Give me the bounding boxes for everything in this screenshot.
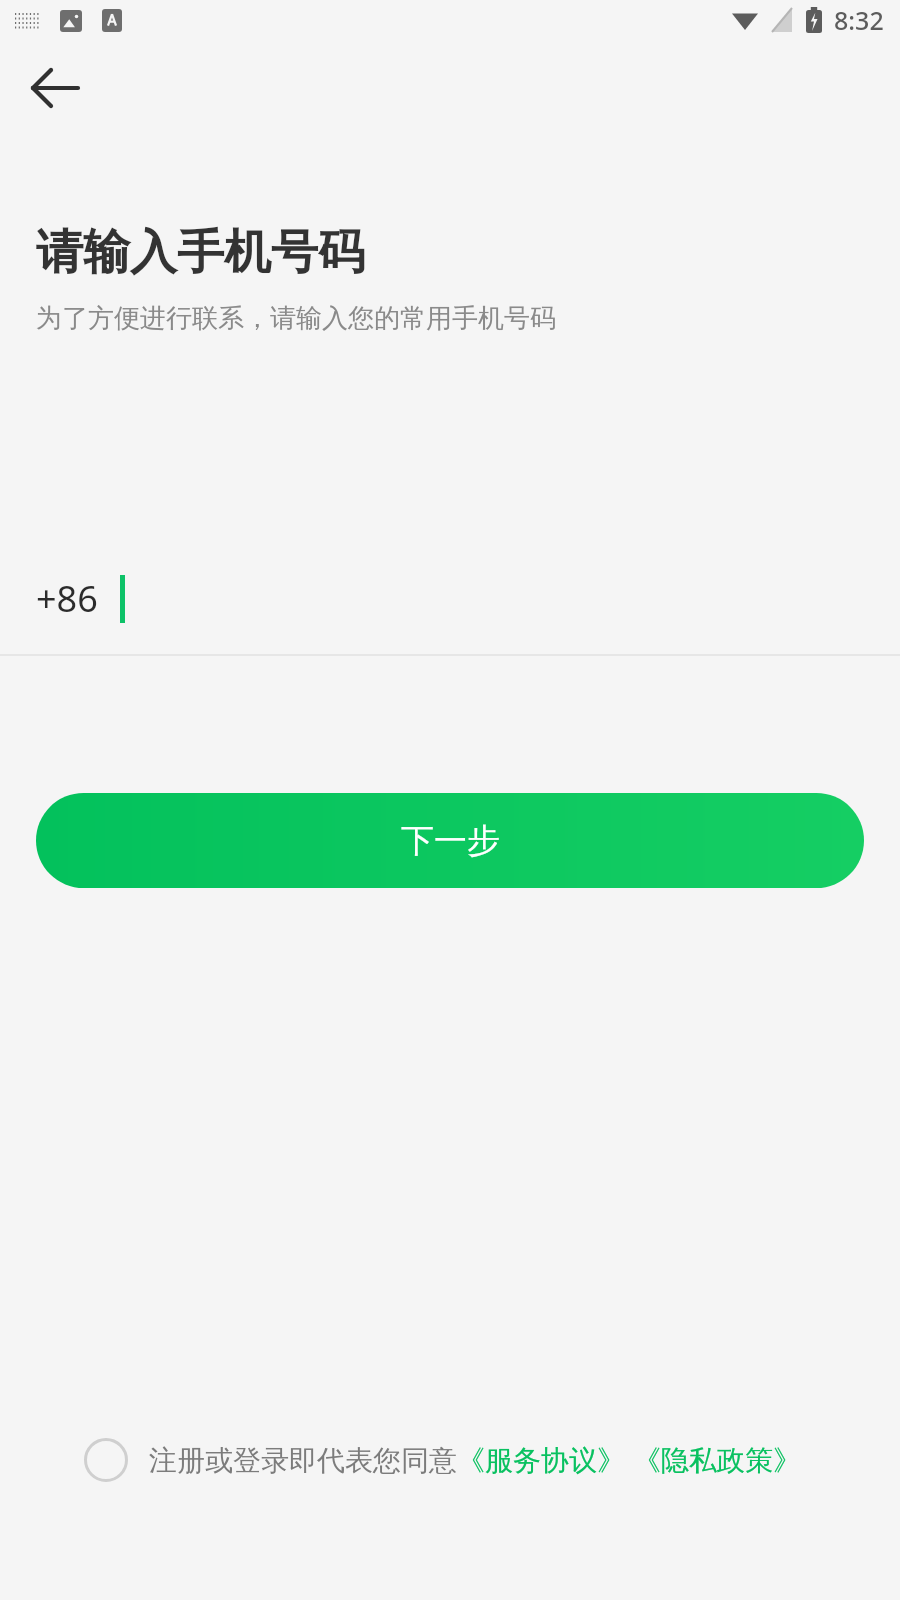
staticText: 《隐私政策》 — [633, 1443, 801, 1478]
staticText: 为了方便进行联系，请输入您的常用手机号码 — [36, 302, 556, 335]
staticText: 请输入手机号码 — [36, 223, 365, 282]
button[interactable]: Back — [8, 50, 84, 126]
button[interactable]: 《服务协议》 — [457, 1443, 625, 1478]
button[interactable]: 下一步 — [36, 793, 864, 888]
button[interactable]: 《隐私政策》 — [633, 1443, 801, 1478]
staticText: 《服务协议》 — [457, 1443, 625, 1478]
button[interactable]: +86 — [0, 540, 900, 656]
staticText: 注册或登录即代表您同意 — [149, 1443, 457, 1478]
button[interactable]: Agree to terms — [80, 1434, 132, 1486]
staticText: 下一步 — [401, 820, 500, 862]
staticText: +86 — [36, 574, 98, 623]
staticText: 8:32 — [834, 3, 884, 37]
